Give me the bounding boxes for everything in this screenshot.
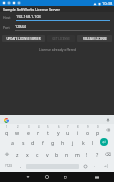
staticText: 3 [28,125,30,129]
button[interactable]: 5 [43,124,53,136]
button[interactable]: 3 [23,124,33,136]
button[interactable]: RELEASE LICENSE [77,35,112,42]
staticText: c [36,151,39,158]
button[interactable]: 2 [12,124,23,136]
button[interactable]: 8 [73,124,83,136]
staticText: f [42,139,44,146]
staticText: b [55,151,59,158]
button[interactable]: d [28,136,38,148]
staticText: RELEASE LICENSE [83,37,107,41]
staticText: j [72,139,74,146]
staticText: g [51,139,55,146]
staticText: r [37,129,40,136]
staticText: 9 [87,125,89,129]
button[interactable]: h [58,136,68,148]
staticText: d [31,139,35,146]
staticText: UPDATE LICENSE SERVER [6,37,41,41]
button[interactable]: l [88,136,98,148]
button[interactable]: 6 [53,124,63,136]
button[interactable]: 1 [1,124,12,136]
button[interactable]: x [22,148,32,160]
button[interactable]: s [18,136,28,148]
button[interactable]: 192.168.1.103 [16,14,110,21]
staticText: Host [3,15,11,20]
button[interactable]: v [42,148,52,160]
button[interactable]: ! [82,148,92,160]
button[interactable]: Back [18,172,37,182]
button[interactable]: c [32,148,42,160]
staticText: 7 [67,125,69,129]
staticText: ? [96,151,99,158]
staticText: Sample SoftWorks License Server [3,7,60,12]
staticText: t [47,129,49,136]
staticText: 1 [6,125,8,129]
button[interactable]: GET LICENSE [47,35,75,42]
staticText: k [82,139,85,146]
button[interactable]: Recents [56,172,75,182]
button[interactable]: Voice input [105,117,111,123]
staticText: 8 [77,125,79,129]
button[interactable]: f [38,136,48,148]
button[interactable]: Switch keyboard [87,172,106,182]
staticText: x [26,151,29,158]
staticText: Port [3,25,10,30]
button[interactable]: z [13,148,22,160]
staticText: 4 [38,125,40,129]
button[interactable]: 0 [93,124,103,136]
button[interactable]: ?123 [1,160,16,172]
staticText: 12844 [15,24,26,29]
button[interactable]: Next field [99,160,113,172]
staticText: h [61,139,65,146]
button[interactable]: 4 [33,124,43,136]
staticText: w [15,129,20,136]
staticText: a [11,139,14,146]
staticText: z [16,151,19,158]
button[interactable]: Home [37,172,56,182]
staticText: s [22,139,25,146]
button[interactable]: Google [3,117,9,123]
staticText: u [66,129,70,136]
button[interactable]: a [7,136,18,148]
button[interactable]: m [72,148,82,160]
staticText: GET LICENSE [52,37,70,41]
button[interactable]: ? [92,148,102,160]
staticText: . [94,163,96,169]
button[interactable]: k [78,136,88,148]
staticText: y [57,129,60,136]
button[interactable]: Enter [99,137,109,147]
staticText: 0 [97,125,99,129]
staticText: 5 [47,125,49,129]
button[interactable]: g [48,136,58,148]
button[interactable]: , [16,160,25,172]
staticText: 10:38 [102,1,113,6]
button[interactable]: Shift [1,148,13,160]
staticText: q [5,129,9,136]
staticText: ⌫ [105,152,111,157]
button[interactable]: 12844 [15,24,110,31]
button[interactable]: 7 [63,124,73,136]
staticText: License already offered [39,47,76,52]
staticText: 2 [17,125,19,129]
staticText: 6 [58,125,60,129]
staticText: v [46,151,49,158]
button[interactable]: 9 [83,124,93,136]
button[interactable]: Emoji [80,160,90,172]
staticText: ! [86,151,88,158]
staticText: 192.168.1.103 [16,14,41,19]
button[interactable]: b [52,148,62,160]
staticText: p [96,129,100,136]
staticText: e [27,129,30,136]
button[interactable]: Delete [102,148,113,160]
staticText: →| [104,164,109,168]
staticText: m [75,151,80,158]
button[interactable]: UPDATE LICENSE SERVER [2,35,45,42]
button[interactable]: Backspace [103,124,113,136]
button[interactable]: n [62,148,72,160]
staticText: , [20,163,22,169]
staticText: l [92,139,94,146]
staticText: ?123 [5,164,12,168]
staticText: n [65,151,69,158]
button[interactable]: j [68,136,78,148]
